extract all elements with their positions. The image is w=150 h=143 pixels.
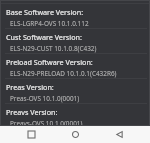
button[interactable]: Preload Software Version:	[0, 54, 150, 78]
button[interactable]: Recent apps	[16, 126, 46, 143]
staticText: Preas Version:	[6, 82, 54, 92]
staticText: Preload Software Version:	[6, 57, 93, 67]
staticText: Preas-OVS 10.1.0(0001)	[10, 94, 80, 103]
button[interactable]: Cust Software Version:	[0, 29, 150, 53]
staticText: ELS-N29-CUST 10.1.0.8(C432)	[10, 44, 97, 53]
staticText: ELS-N29-PRELOAD 10.1.0.1(C432R6)	[10, 69, 117, 78]
button[interactable]: Base Software Version:	[0, 4, 150, 28]
button[interactable]: Home	[60, 126, 90, 143]
staticText: ELS-LGRP4-OVS 10.1.0.112	[10, 19, 89, 28]
staticText: Cust Software Version:	[6, 32, 82, 42]
staticText: Preavs Version:	[6, 107, 58, 117]
staticText: Preavs-OVS 10.1.0(0001)	[10, 119, 83, 126]
staticText: Base Software Version:	[6, 7, 84, 17]
button[interactable]: Preavs Version:	[0, 104, 150, 126]
button[interactable]: Preas Version:	[0, 79, 150, 103]
button[interactable]: Back	[104, 126, 134, 143]
